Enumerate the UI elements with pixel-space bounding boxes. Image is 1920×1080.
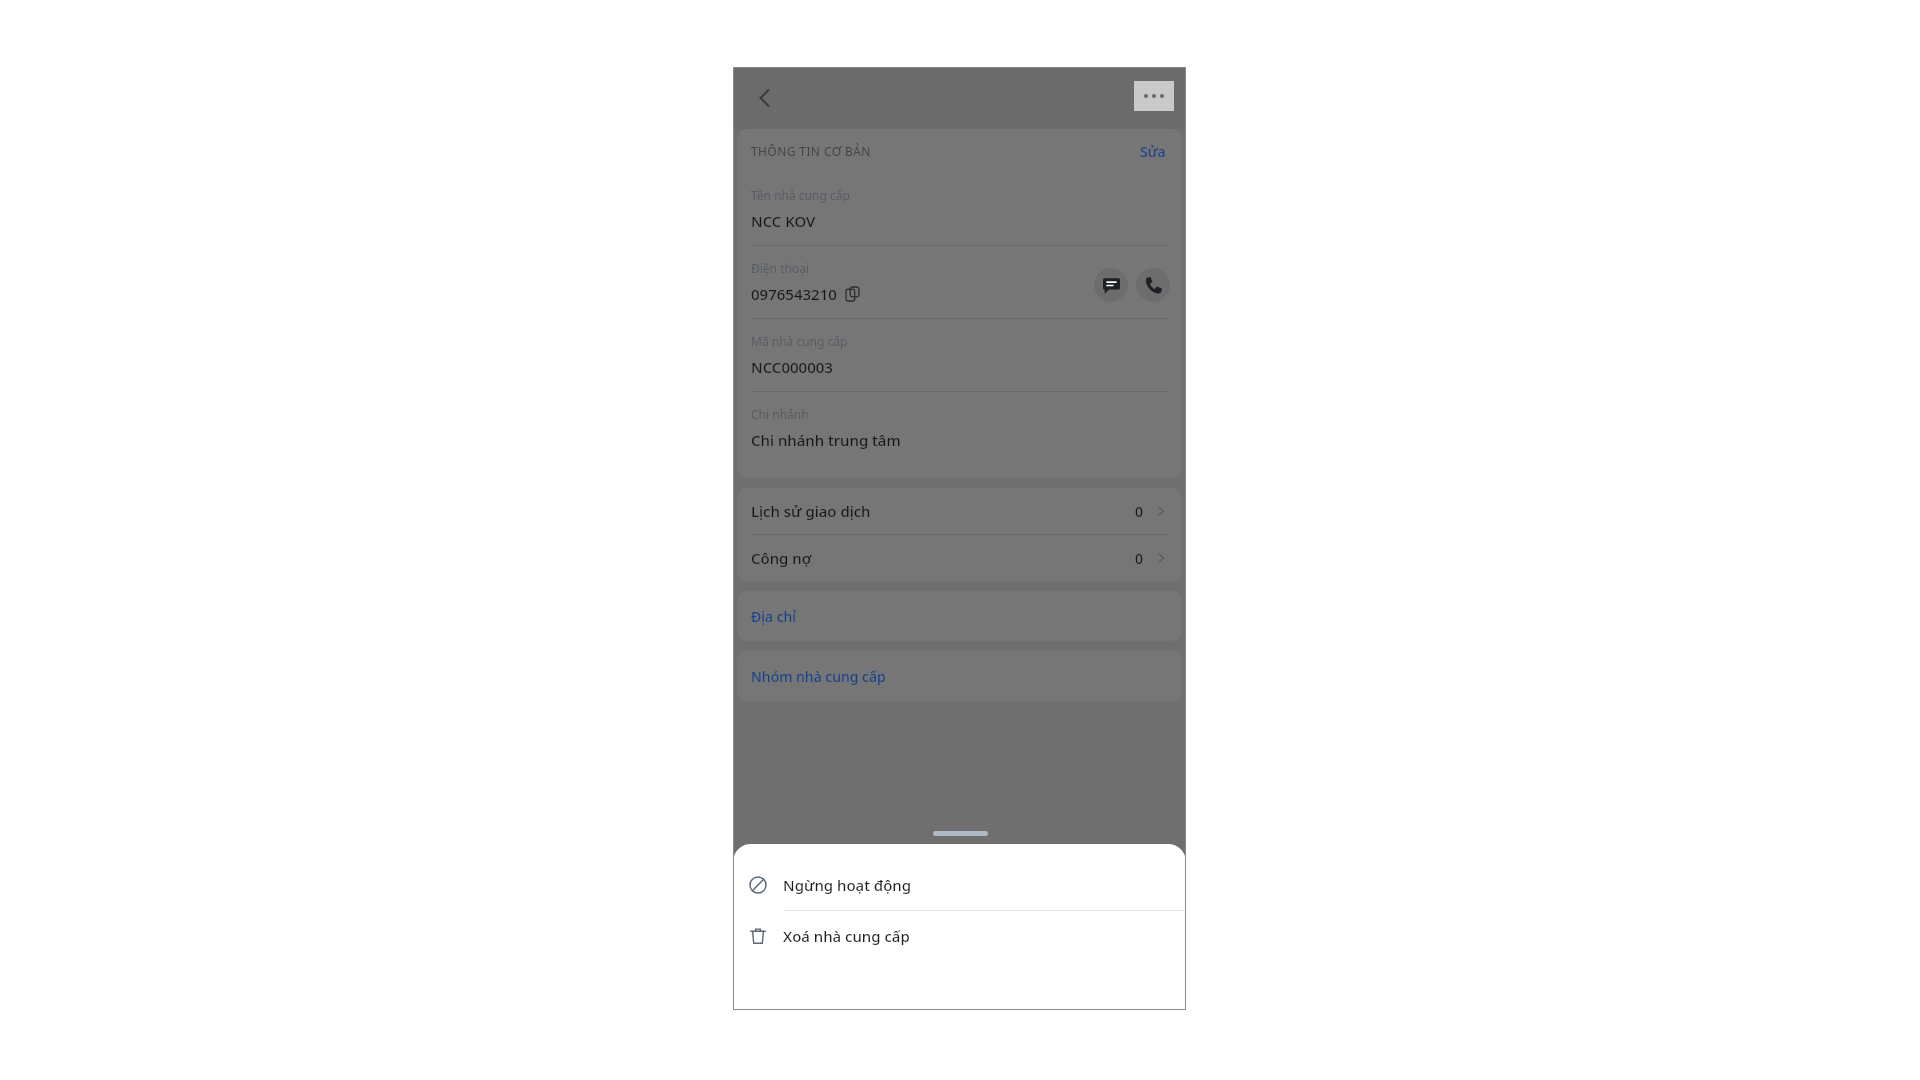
button[interactable]: More options: [1134, 81, 1174, 111]
staticText: Sửa: [1140, 142, 1166, 161]
button[interactable]: Xoá nhà cung cấp: [733, 911, 1186, 961]
staticText: 0: [1135, 549, 1144, 568]
button[interactable]: Địa chỉ: [737, 591, 1182, 641]
button[interactable]: Ngừng hoạt động: [733, 860, 1186, 911]
button[interactable]: Call: [1136, 268, 1170, 302]
staticText: Ngừng hoạt động: [783, 875, 912, 895]
button[interactable]: Send message: [1094, 268, 1128, 302]
button[interactable]: Lịch sử giao dịch: [737, 488, 1182, 534]
staticText: NCC KOV: [751, 211, 816, 231]
staticText: 0976543210: [751, 284, 837, 304]
staticText: Nhóm nhà cung cấp: [751, 667, 886, 686]
button[interactable]: Nhóm nhà cung cấp: [737, 651, 1182, 701]
staticText: Xoá nhà cung cấp: [783, 926, 910, 946]
staticText: Điện thoại: [751, 260, 809, 276]
staticText: NCC000003: [751, 357, 833, 377]
staticText: Địa chỉ: [751, 607, 797, 626]
staticText: Công nợ: [751, 548, 1135, 568]
staticText: Chi nhánh: [751, 406, 809, 422]
button[interactable]: Back: [741, 74, 789, 122]
staticText: Lịch sử giao dịch: [751, 501, 1135, 521]
staticText: 0: [1135, 502, 1144, 521]
button[interactable]: Copy phone number: [844, 285, 862, 303]
staticText: THÔNG TIN CƠ BẢN: [751, 143, 1138, 159]
staticText: Chi nhánh trung tâm: [751, 430, 901, 450]
staticText: Mã nhà cung cấp: [751, 333, 848, 349]
button[interactable]: Sửa: [1138, 138, 1168, 165]
button[interactable]: Công nợ: [737, 535, 1182, 581]
staticText: Tên nhà cung cấp: [751, 187, 850, 203]
